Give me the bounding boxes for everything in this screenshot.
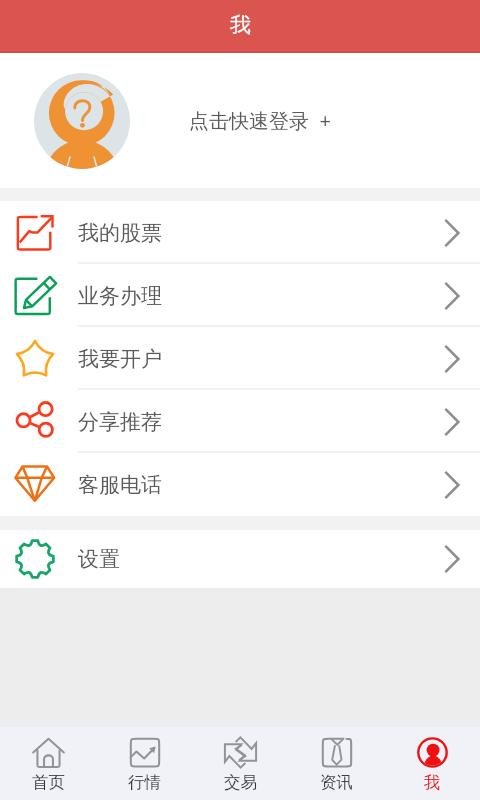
button[interactable]: 客服电话 — [0, 453, 480, 516]
button[interactable]: 我 — [384, 727, 480, 800]
staticText: 交易 — [224, 772, 257, 793]
staticText: 我的股票 — [78, 220, 162, 246]
staticText: 点击快速登录 + — [189, 107, 331, 134]
staticText: 业务办理 — [78, 283, 162, 309]
staticText: 设置 — [78, 546, 120, 572]
button[interactable]: 交易 — [192, 727, 288, 800]
button[interactable]: 行情 — [96, 727, 192, 800]
button[interactable]: 设置 — [0, 530, 480, 588]
staticText: 资讯 — [320, 772, 353, 793]
staticText: 客服电话 — [78, 472, 162, 498]
staticText: 我 — [230, 12, 251, 38]
staticText: 我 — [424, 772, 441, 793]
staticText: 首页 — [32, 772, 65, 793]
button[interactable]: 业务办理 — [0, 264, 480, 327]
button[interactable]: 我的股票 — [0, 201, 480, 264]
staticText: 行情 — [128, 772, 161, 793]
button[interactable]: 资讯 — [288, 727, 384, 800]
staticText: 我要开户 — [78, 346, 162, 372]
button[interactable]: 我要开户 — [0, 327, 480, 390]
staticText: 分享推荐 — [78, 409, 162, 435]
button[interactable]: 分享推荐 — [0, 390, 480, 453]
button[interactable]: 点击快速登录 + — [0, 53, 480, 188]
button[interactable]: 首页 — [0, 727, 96, 800]
